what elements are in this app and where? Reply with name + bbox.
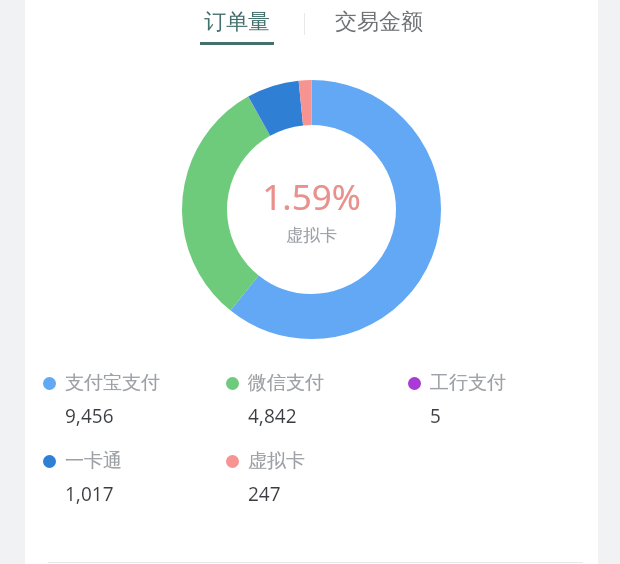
button[interactable]: 一卡通 xyxy=(43,447,226,509)
staticText: 工行支付 xyxy=(430,371,506,395)
button[interactable]: 支付宝支付 xyxy=(43,369,226,431)
staticText: 支付宝支付 xyxy=(65,371,160,395)
staticText: 247 xyxy=(248,481,281,507)
other: 订单量占比环形图 xyxy=(182,80,441,339)
button[interactable]: 订单量 xyxy=(194,8,280,45)
staticText: 订单量 xyxy=(204,8,270,36)
button[interactable]: 工行支付 xyxy=(408,369,590,431)
button[interactable]: 交易金额 xyxy=(329,8,429,36)
staticText: 4,842 xyxy=(248,403,297,429)
staticText: 交易金额 xyxy=(335,8,423,36)
staticText: 5 xyxy=(430,403,441,429)
staticText: 微信支付 xyxy=(248,371,324,395)
staticText: 虚拟卡 xyxy=(248,449,305,473)
staticText: 1,017 xyxy=(65,481,114,507)
staticText: 一卡通 xyxy=(65,449,122,473)
staticText: 9,456 xyxy=(65,403,114,429)
staticText: 虚拟卡 xyxy=(286,225,337,246)
staticText: 1.59% xyxy=(262,173,361,221)
button[interactable]: 微信支付 xyxy=(226,369,408,431)
button[interactable]: 虚拟卡 xyxy=(226,447,408,509)
